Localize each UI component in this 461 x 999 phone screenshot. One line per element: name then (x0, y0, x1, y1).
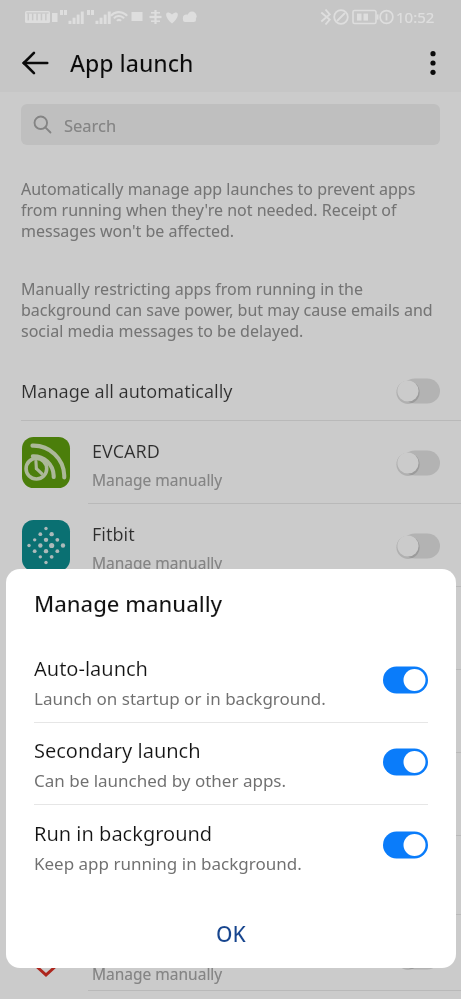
button[interactable]: Run in background (6, 814, 456, 880)
staticText: Manage manually (92, 552, 223, 573)
staticText: Maps (92, 771, 139, 796)
staticText: Manage manually (92, 718, 223, 739)
button[interactable]: Toggle (394, 531, 440, 561)
button[interactable]: Toggle (394, 697, 440, 727)
staticText: OK (216, 920, 246, 949)
staticText: EVCARD (92, 439, 160, 464)
button[interactable]: Messages (0, 836, 461, 919)
button[interactable]: Toggle (394, 376, 440, 406)
button[interactable]: Toggle (383, 748, 428, 776)
staticText: Manage all automatically (21, 379, 233, 404)
staticText: Google (92, 688, 153, 713)
button[interactable]: Search (21, 104, 440, 145)
staticText: 10:52 (396, 7, 435, 27)
staticText: Manage manually (92, 963, 223, 984)
staticText: Manage manually (34, 588, 223, 618)
staticText: Manage manually (92, 801, 223, 822)
button[interactable]: Gmail (0, 587, 461, 670)
button[interactable]: Toggle (383, 666, 428, 694)
button[interactable]: Toggle (394, 942, 440, 972)
button[interactable]: Toggle (394, 780, 440, 810)
staticText: Search (64, 114, 117, 136)
button[interactable]: Toggle (383, 831, 428, 859)
button[interactable]: More options (417, 47, 449, 79)
button[interactable]: Toggle (394, 448, 440, 478)
button[interactable]: Secondary launch (6, 731, 456, 797)
button[interactable]: Maps (0, 753, 461, 836)
staticText: Run in background (34, 820, 213, 847)
staticText: Fitbit (92, 522, 135, 547)
button[interactable]: EVCARD (0, 421, 461, 504)
button[interactable]: Back (14, 42, 56, 84)
staticText: Secondary launch (34, 737, 201, 764)
staticText: Messages (92, 854, 176, 879)
staticText: Auto-launch (34, 655, 148, 682)
button[interactable]: Manage all automatically (0, 362, 461, 420)
button[interactable]: Auto-launch (6, 649, 456, 715)
staticText: Keep app running in background. (34, 852, 302, 875)
staticText: Automatically manage app launches to pre… (21, 178, 416, 242)
staticText: Gmail (92, 605, 142, 630)
staticText: Launch on startup or in background. (34, 687, 326, 710)
staticText: Can be launched by other apps. (34, 769, 287, 792)
button[interactable]: Google (0, 670, 461, 753)
staticText: Manage manually (92, 469, 223, 490)
staticText: App launch (70, 47, 194, 78)
button[interactable]: OK (6, 907, 456, 961)
button[interactable]: Fitbit (0, 504, 461, 587)
staticText: Manually restricting apps from running i… (21, 278, 433, 342)
button[interactable]: Phone (0, 915, 461, 998)
